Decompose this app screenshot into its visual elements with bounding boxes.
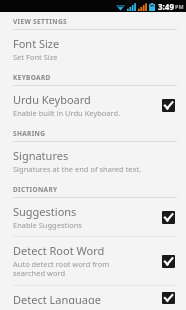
staticText: PM [175,3,184,10]
staticText: Detect Language [13,292,101,304]
staticText: Suggestions [13,204,77,219]
button[interactable]: Toggle setting [161,254,175,268]
staticText: Set Font Size [13,52,58,62]
staticText: Signatures [13,148,69,163]
staticText: Detect Root Word [13,243,105,258]
staticText: Urdu Keyboard [13,92,91,107]
button[interactable]: Font Size [0,30,186,68]
staticText: Enable built in Urdu Keyboard. [13,108,121,118]
button[interactable]: Toggle setting [161,210,175,224]
button[interactable]: Detect Root Word [0,237,186,285]
button[interactable]: Detect Language [0,286,186,310]
button[interactable]: Toggle setting [161,292,175,304]
staticText: 3:49 [158,1,174,12]
staticText: VIEW SETTINGS [13,17,67,26]
staticText: Font Size [13,36,60,51]
staticText: KEYBOARD [13,73,51,82]
staticText: Signatures at the end of shared text. [13,164,142,174]
button[interactable]: Toggle setting [161,98,175,112]
staticText: SHARING [13,129,46,138]
button[interactable]: Signatures [0,142,186,180]
button[interactable]: Urdu Keyboard [0,86,186,124]
staticText: DICTIONARY [13,185,58,194]
button[interactable]: Suggestions [0,198,186,236]
staticText: Enable Suggestions [13,220,82,230]
staticText: Auto detect root word from searched word [13,259,110,279]
